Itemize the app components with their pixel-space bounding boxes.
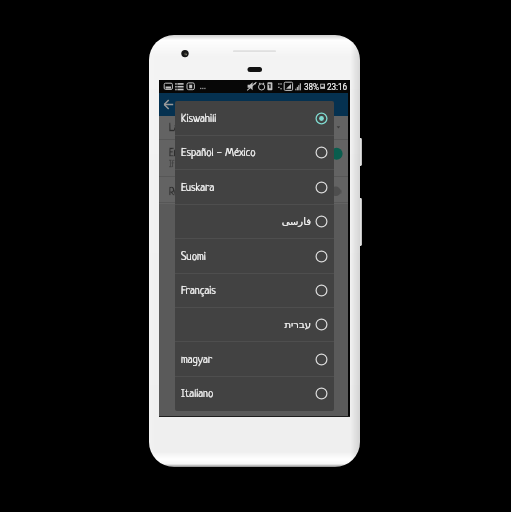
staticText: Kiswahili: [181, 113, 311, 126]
staticText: 38%: [304, 82, 319, 92]
button[interactable]: Euskara: [175, 170, 334, 204]
button[interactable]: فارسی: [175, 204, 334, 238]
button[interactable]: עברית: [175, 307, 334, 341]
staticText: Español - México: [181, 147, 311, 160]
button[interactable]: magyar: [175, 342, 334, 376]
button[interactable]: Navigate up: [159, 93, 182, 116]
button[interactable]: Español - México: [175, 135, 334, 169]
button[interactable]: Suomi: [175, 239, 334, 273]
staticText: Italiano: [181, 388, 311, 401]
staticText: Enable notifications: [169, 148, 244, 159]
staticText: Suomi: [181, 251, 311, 264]
staticText: If enabled, you will be notified: [169, 160, 263, 169]
button[interactable]: Kiswahili: [175, 101, 334, 135]
staticText: עברית: [181, 319, 311, 331]
staticText: Français: [181, 285, 311, 298]
staticText: magyar: [181, 354, 311, 367]
staticText: Euskara: [181, 182, 311, 195]
button[interactable]: Italiano: [175, 376, 334, 410]
staticText: Restore defaults: [169, 187, 233, 198]
staticText: Language: [169, 123, 206, 134]
staticText: فارسی: [181, 216, 311, 228]
button[interactable]: Français: [175, 273, 334, 307]
staticText: 23:16: [327, 82, 347, 92]
